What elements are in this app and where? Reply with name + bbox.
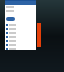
button[interactable] [5,39,36,43]
button[interactable] [5,31,36,35]
button[interactable] [5,43,36,47]
button[interactable] [5,35,36,39]
button[interactable] [5,27,36,31]
button[interactable] [5,47,36,50]
button[interactable] [5,23,36,27]
button[interactable] [6,17,15,21]
